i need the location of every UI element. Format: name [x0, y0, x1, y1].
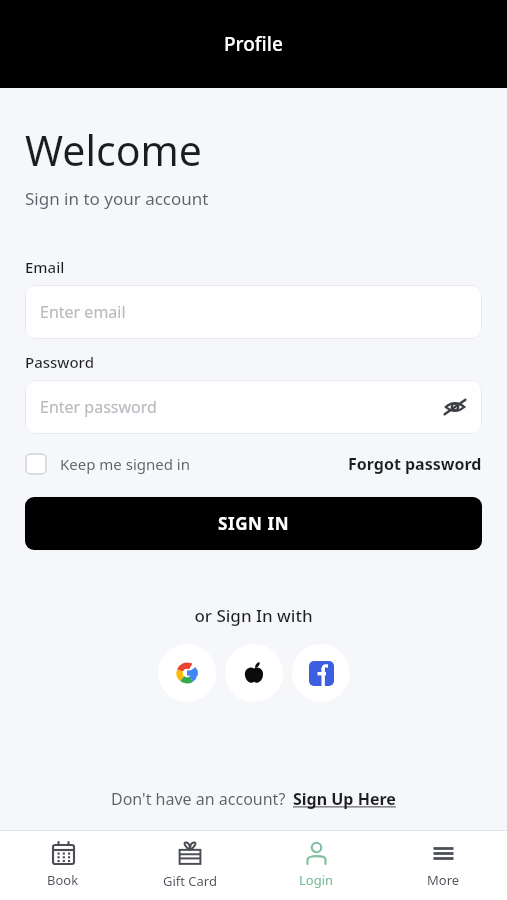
button[interactable]: Sign in with Apple: [225, 644, 283, 702]
staticText: Password: [25, 352, 94, 372]
staticText: Sign in to your account: [25, 187, 209, 210]
button[interactable]: Book: [0, 830, 126, 900]
staticText: Profile: [224, 31, 283, 57]
button[interactable]: Enter password: [25, 380, 482, 434]
staticText: Forgot password: [348, 453, 482, 475]
staticText: Don't have an account?: [111, 788, 286, 810]
staticText: Gift Card: [163, 872, 217, 890]
button[interactable]: Show password: [442, 394, 468, 420]
button[interactable]: Login: [253, 830, 380, 900]
button[interactable]: Keep me signed in: [25, 453, 190, 475]
staticText: Sign Up Here: [293, 788, 396, 810]
staticText: Login: [299, 871, 334, 889]
staticText: Keep me signed in: [60, 454, 190, 474]
staticText: Email: [25, 257, 65, 277]
button[interactable]: Gift Card: [126, 830, 253, 900]
staticText: Book: [47, 871, 79, 889]
button[interactable]: More: [380, 830, 507, 900]
button[interactable]: SIGN IN: [25, 497, 482, 550]
button[interactable]: Forgot password: [348, 453, 482, 475]
staticText: or Sign In with: [25, 604, 482, 627]
button[interactable]: Sign in with Google: [158, 644, 216, 702]
button[interactable]: Sign Up Here: [293, 788, 396, 810]
button[interactable]: Sign in with Facebook: [292, 644, 350, 702]
staticText: More: [427, 871, 460, 889]
staticText: Enter email: [40, 301, 126, 323]
staticText: Welcome: [25, 122, 202, 178]
staticText: SIGN IN: [218, 512, 290, 535]
staticText: Enter password: [40, 396, 157, 418]
button[interactable]: Enter email: [25, 285, 482, 339]
